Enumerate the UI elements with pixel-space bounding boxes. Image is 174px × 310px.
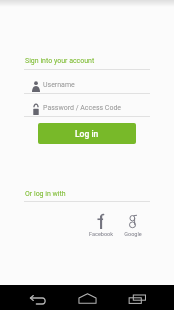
button[interactable]: Facebook — [85, 211, 117, 239]
button[interactable]: Back — [22, 285, 52, 310]
button[interactable]: Google — [117, 211, 149, 239]
staticText: Or log in with — [25, 190, 66, 198]
staticText: Sign into your account — [25, 57, 95, 65]
button[interactable]: Home — [72, 285, 102, 310]
button[interactable]: Username — [24, 79, 150, 94]
button[interactable]: Log in — [38, 123, 136, 144]
staticText: Google — [124, 231, 142, 237]
button[interactable]: Password / Access Code — [24, 102, 150, 117]
staticText: Facebook — [89, 231, 113, 237]
button[interactable]: Recent apps — [122, 285, 152, 310]
staticText: Password / Access Code — [43, 104, 122, 112]
staticText: Username — [43, 81, 75, 89]
staticText: Log in — [75, 129, 99, 139]
